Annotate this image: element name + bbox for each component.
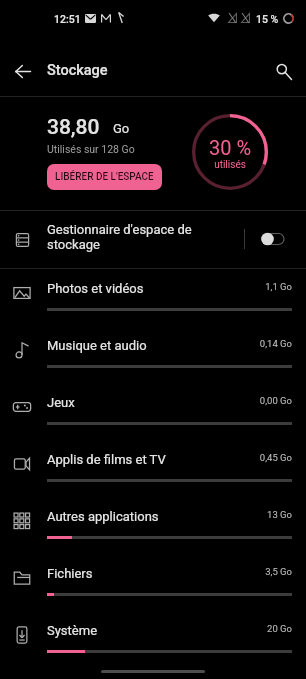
staticText: utilisés: [192, 159, 268, 171]
staticText: 20 Go: [180, 623, 292, 634]
staticText: Go: [113, 121, 130, 136]
staticText: 0,00 Go: [180, 395, 292, 406]
button[interactable]: Activer le gestionnaire d'espace de stoc…: [256, 223, 294, 255]
staticText: 3,5 Go: [180, 566, 292, 577]
staticText: Utilisés sur 128 Go: [47, 143, 135, 155]
staticText: 0,14 Go: [180, 338, 292, 349]
staticText: Stockage: [47, 62, 108, 79]
staticText: Musique et audio: [47, 338, 147, 353]
staticText: 13 Go: [180, 509, 292, 520]
staticText: Gestionnaire d'espace de stockage: [47, 222, 237, 252]
staticText: 0,45 Go: [180, 452, 292, 463]
staticText: Système: [47, 623, 98, 638]
staticText: Autres applications: [47, 509, 159, 524]
staticText: Jeux: [47, 395, 75, 410]
button[interactable]: Autres applications: [0, 497, 306, 554]
staticText: Fichiers: [47, 566, 93, 581]
staticText: 15 %: [256, 13, 279, 25]
staticText: Photos et vidéos: [47, 281, 144, 296]
staticText: LIBÉRER DE L'ESPACE: [55, 171, 154, 183]
button[interactable]: Rechercher: [268, 56, 299, 87]
button[interactable]: LIBÉRER DE L'ESPACE: [47, 164, 162, 190]
button[interactable]: Gestionnaire d'espace de stockage: [0, 211, 306, 265]
button[interactable]: Applis de films et TV: [0, 440, 306, 497]
staticText: 12:51: [54, 13, 81, 25]
button[interactable]: Fichiers: [0, 554, 306, 611]
button[interactable]: Photos et vidéos: [0, 269, 306, 326]
staticText: 38,80: [47, 115, 100, 140]
staticText: 30 %: [192, 136, 268, 159]
button[interactable]: Musique et audio: [0, 326, 306, 383]
staticText: Applis de films et TV: [47, 452, 166, 467]
button[interactable]: Système: [0, 611, 306, 668]
staticText: 1,1 Go: [180, 281, 292, 292]
button[interactable]: Jeux: [0, 383, 306, 440]
button[interactable]: Retour: [7, 56, 38, 87]
